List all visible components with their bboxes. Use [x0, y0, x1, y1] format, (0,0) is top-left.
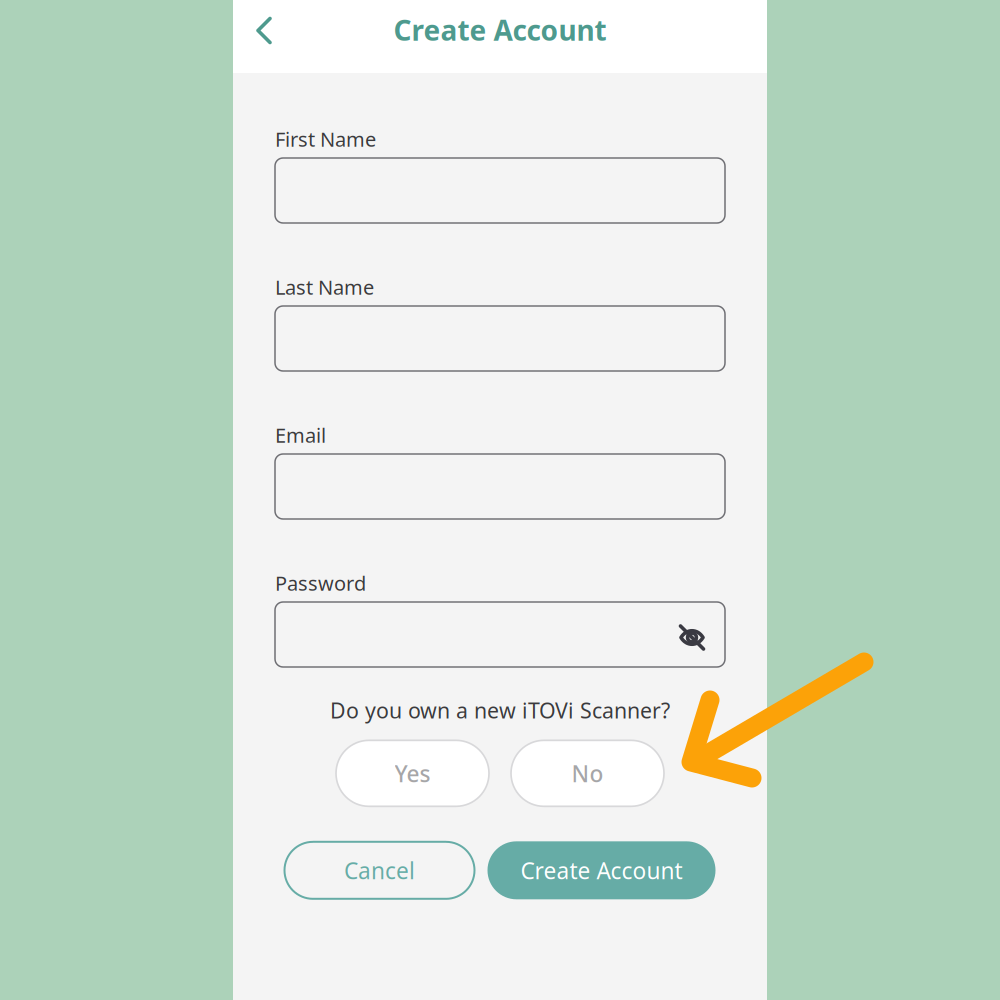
button[interactable]: No [511, 740, 664, 806]
staticText: Cancel [344, 855, 415, 885]
button[interactable]: Cancel [284, 842, 474, 899]
staticText: No [571, 758, 603, 788]
staticText: First Name [275, 126, 376, 152]
staticText: Password [275, 570, 366, 596]
staticText: Last Name [275, 274, 374, 300]
staticText: Create Account [393, 11, 606, 49]
staticText: Yes [394, 758, 430, 788]
button[interactable]: Back [233, 8, 287, 64]
button[interactable]: Yes [336, 740, 489, 806]
staticText: Email [275, 422, 326, 448]
staticText: Create Account [520, 855, 682, 885]
staticText: Do you own a new iTOVi Scanner? [330, 696, 670, 724]
button[interactable]: Create Account [487, 841, 715, 899]
